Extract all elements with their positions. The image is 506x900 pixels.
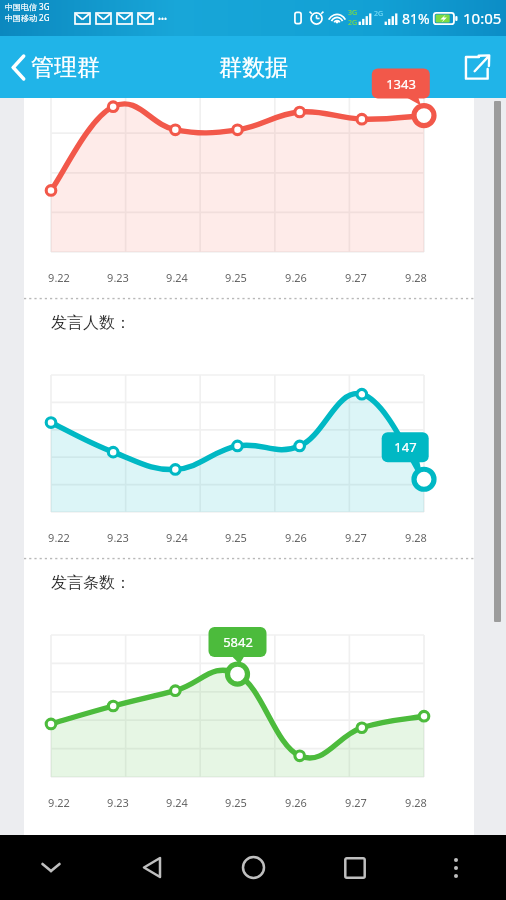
staticText: 1343 [386, 75, 416, 93]
button[interactable]: Back [102, 835, 203, 900]
staticText: 9.22 [48, 270, 70, 285]
staticText: 9.26 [285, 530, 307, 545]
staticText: 81% [402, 9, 430, 28]
staticText: 9.28 [405, 530, 427, 545]
staticText: 9.23 [107, 530, 129, 545]
staticText: 9.28 [405, 795, 427, 810]
button[interactable]: Share [447, 43, 506, 92]
staticText: 管理群 [31, 53, 100, 82]
staticText: 2G [348, 18, 358, 28]
staticText: 2G [374, 9, 384, 19]
staticText: 9.27 [345, 270, 367, 285]
button[interactable]: More options [405, 835, 506, 900]
staticText: 9.24 [166, 795, 188, 810]
staticText: ••• [158, 13, 168, 24]
staticText: 9.27 [345, 530, 367, 545]
staticText: 群数据 [219, 53, 288, 82]
staticText: 147 [394, 438, 417, 456]
staticText: 发言人数： [51, 313, 131, 333]
staticText: 9.25 [225, 270, 247, 285]
staticText: 9.24 [166, 270, 188, 285]
staticText: 中国移动 2G [5, 12, 50, 23]
staticText: 9.24 [166, 530, 188, 545]
staticText: 9.23 [107, 270, 129, 285]
staticText: 9.28 [405, 270, 427, 285]
staticText: 中国电信 3G [5, 1, 50, 12]
staticText: 9.22 [48, 795, 70, 810]
staticText: 9.27 [345, 795, 367, 810]
staticText: 9.23 [107, 795, 129, 810]
button[interactable]: Home [203, 835, 304, 900]
staticText: 9.25 [225, 530, 247, 545]
staticText: 发言条数： [51, 573, 131, 593]
button[interactable]: Recents [304, 835, 405, 900]
staticText: 9.26 [285, 270, 307, 285]
button[interactable]: 管理群 [0, 44, 114, 91]
button[interactable]: Hide [0, 835, 102, 900]
staticText: 10:05 [463, 8, 502, 28]
staticText: 9.25 [225, 795, 247, 810]
staticText: 3G [348, 8, 358, 18]
staticText: 5842 [223, 633, 253, 651]
staticText: 9.22 [48, 530, 70, 545]
staticText: 9.26 [285, 795, 307, 810]
